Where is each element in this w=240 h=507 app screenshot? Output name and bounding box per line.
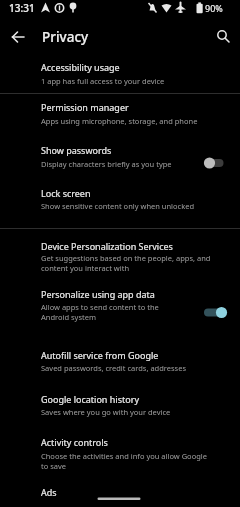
staticText: Allow apps to send content to the — [41, 302, 159, 312]
staticText: Android system — [41, 312, 96, 322]
staticText: 1 app has full access to your device — [41, 76, 165, 86]
button[interactable]: Google location history — [0, 385, 240, 428]
button[interactable] — [8, 27, 28, 47]
staticText: 13:31 — [9, 1, 35, 15]
staticText: Ads — [41, 486, 57, 498]
button[interactable]: Show passwords — [0, 131, 240, 180]
staticText: Activity controls — [41, 436, 108, 448]
staticText: Device Personalization Services — [41, 240, 173, 252]
staticText: Privacy — [42, 28, 89, 46]
staticText: Display characters briefly as you type — [41, 159, 172, 169]
button[interactable]: Device Personalization Services — [0, 229, 240, 283]
staticText: Personalize using app data — [41, 288, 155, 300]
staticText: Apps using microphone, storage, and phon… — [41, 116, 198, 126]
staticText: Autofill service from Google — [41, 349, 159, 361]
staticText: Lock screen — [41, 187, 91, 199]
staticText: Google location history — [41, 393, 139, 405]
staticText: to save — [41, 461, 67, 471]
button[interactable]: Lock screen — [0, 180, 240, 228]
staticText: Saved passwords, credit cards, addresses — [41, 363, 186, 373]
staticText: content you interact with — [41, 263, 130, 273]
button[interactable]: Activity controls — [0, 428, 240, 480]
button[interactable]: Personalize using app data — [0, 283, 240, 338]
button[interactable]: Ads — [0, 480, 240, 507]
staticText: Choose the activities and info you allow… — [41, 451, 207, 461]
staticText: Get suggestions based on the people, app… — [41, 253, 211, 263]
button[interactable] — [213, 26, 233, 46]
button[interactable]: Permission manager — [0, 94, 240, 131]
button[interactable]: Accessibility usage — [0, 54, 240, 93]
staticText: Saves where you go with your device — [41, 407, 171, 417]
staticText: Permission manager — [41, 101, 129, 113]
staticText: Accessibility usage — [41, 61, 120, 73]
staticText: 90% — [205, 2, 223, 14]
staticText: Show sensitive content only when unlocke… — [41, 201, 195, 211]
button[interactable]: Autofill service from Google — [0, 338, 240, 385]
staticText: Show passwords — [41, 144, 112, 156]
